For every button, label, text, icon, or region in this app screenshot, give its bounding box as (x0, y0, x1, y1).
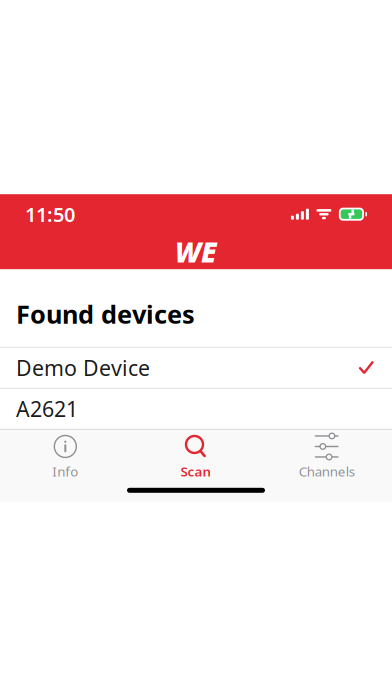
staticText: E (201, 233, 217, 270)
button[interactable]: Info (0, 426, 131, 482)
button[interactable]: Scan (131, 426, 261, 482)
staticText: 11:50 (25, 201, 75, 227)
staticText: Scan (180, 462, 211, 480)
button[interactable]: Demo Device (0, 347, 392, 388)
button[interactable]: A2621 (0, 388, 392, 429)
staticText: Info (52, 462, 78, 480)
staticText: Demo Device (16, 354, 150, 382)
staticText: Found devices (16, 297, 195, 331)
staticText: W (175, 233, 201, 270)
staticText: A2621 (16, 395, 78, 423)
button[interactable]: Channels (261, 426, 392, 482)
staticText: Channels (299, 462, 355, 480)
